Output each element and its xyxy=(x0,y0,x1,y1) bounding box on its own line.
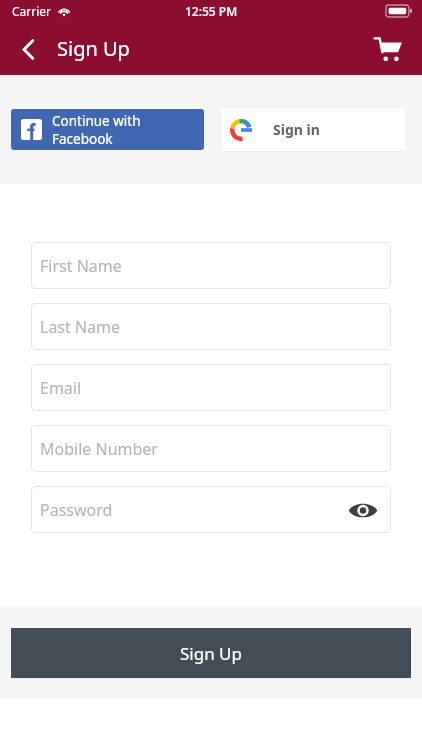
staticText: Sign in xyxy=(273,120,320,139)
staticText: Sign Up xyxy=(180,642,242,665)
staticText: Mobile Number xyxy=(40,438,158,460)
button[interactable]: Continue with Facebook xyxy=(11,109,204,150)
staticText: Carrier xyxy=(12,3,52,19)
button[interactable]: Last Name xyxy=(31,303,391,350)
button[interactable]: Mobile Number xyxy=(31,425,391,472)
staticText: First Name xyxy=(40,255,122,277)
button[interactable]: Sign Up xyxy=(11,628,411,678)
staticText: Continue with Facebook xyxy=(52,112,204,148)
button[interactable]: Back xyxy=(8,29,48,69)
button[interactable]: Sign in xyxy=(220,107,407,152)
button[interactable]: Password xyxy=(31,486,391,533)
button[interactable]: Show password xyxy=(346,493,380,527)
button[interactable]: Cart xyxy=(366,27,410,71)
staticText: Email xyxy=(40,377,82,399)
button[interactable]: Email xyxy=(31,364,391,411)
staticText: Last Name xyxy=(40,316,121,338)
staticText: 12:55 PM xyxy=(185,3,238,19)
button[interactable]: First Name xyxy=(31,242,391,289)
staticText: Sign Up xyxy=(57,35,130,62)
staticText: Password xyxy=(40,499,113,521)
